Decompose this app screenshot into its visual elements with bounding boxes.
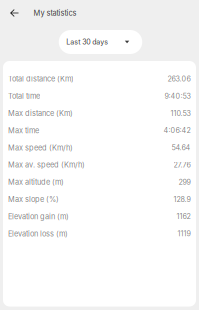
staticText: 27.76: [174, 160, 191, 169]
staticText: Total time: [8, 92, 40, 101]
staticText: Max av. speed (Km/h): [8, 160, 85, 169]
staticText: Max slope (%): [8, 195, 59, 204]
staticText: Total distance (Km): [8, 74, 74, 83]
staticText: 110.53: [171, 109, 191, 118]
staticText: 4:06:42: [164, 126, 191, 135]
staticText: Max altitude (m): [8, 178, 64, 187]
staticText: 299: [179, 178, 191, 186]
staticText: Elevation gain (m): [8, 212, 69, 221]
staticText: Max distance (Km): [8, 109, 73, 118]
staticText: 1119: [178, 229, 191, 238]
staticText: 1162: [177, 212, 191, 221]
button[interactable]: Back: [5, 3, 25, 22]
staticText: My statistics: [33, 8, 76, 17]
staticText: Max time: [8, 126, 39, 135]
staticText: Max speed (Km/h): [8, 143, 73, 152]
staticText: 54.64: [172, 143, 191, 152]
staticText: 9:40:53: [165, 92, 191, 100]
button[interactable]: Last 30 days: [59, 30, 142, 54]
staticText: Elevation loss (m): [8, 229, 68, 238]
staticText: 128.9: [174, 195, 191, 204]
staticText: 263.06: [168, 74, 191, 83]
staticText: Last 30 days: [66, 38, 108, 46]
